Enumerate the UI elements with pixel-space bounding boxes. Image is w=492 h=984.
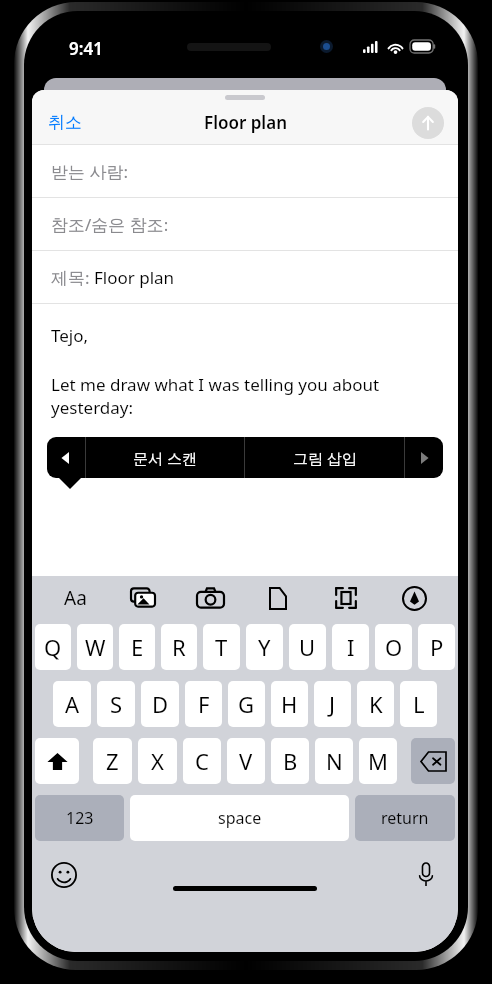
staticText: 제목:	[51, 266, 94, 289]
button[interactable]: 문서 스캔	[86, 437, 244, 478]
staticText: V	[239, 746, 253, 776]
staticText: H	[281, 689, 298, 719]
button[interactable]: Dictate	[408, 857, 444, 893]
button[interactable]: return	[355, 795, 455, 841]
staticText: S	[110, 689, 123, 719]
staticText: B	[283, 746, 298, 776]
button[interactable]: Shift	[35, 738, 79, 784]
button[interactable]: W	[77, 624, 113, 670]
staticText: O	[385, 632, 403, 662]
staticText: return	[381, 807, 429, 829]
button[interactable]: S	[97, 681, 135, 727]
button[interactable]: Send	[412, 107, 444, 139]
button[interactable]: Next	[405, 437, 443, 478]
staticText: C	[195, 746, 209, 776]
staticText: 9:41	[69, 37, 103, 60]
staticText: X	[151, 746, 164, 776]
button[interactable]: G	[228, 681, 265, 727]
staticText: Z	[106, 746, 119, 776]
staticText: Y	[258, 632, 271, 662]
staticText: I	[347, 632, 355, 662]
staticText: W	[85, 632, 106, 662]
staticText: L	[413, 689, 425, 719]
button[interactable]: Z	[93, 738, 132, 784]
button[interactable]: 취소	[32, 106, 98, 139]
staticText: D	[152, 689, 169, 719]
button[interactable]: R	[161, 624, 197, 670]
button[interactable]: F	[185, 681, 222, 727]
staticText: K	[369, 689, 383, 719]
button[interactable]: V	[227, 738, 265, 784]
button[interactable]: O	[375, 624, 412, 670]
staticText: 받는 사람:	[51, 160, 128, 183]
button[interactable]: Text format	[42, 576, 109, 620]
button[interactable]: Previous	[47, 437, 85, 478]
button[interactable]: space	[130, 795, 349, 841]
button[interactable]: 받는 사람:	[32, 145, 458, 198]
staticText: Tejo,	[51, 324, 89, 347]
button[interactable]: Backspace	[411, 738, 455, 784]
staticText: Let me draw what I was telling you about…	[51, 373, 434, 419]
staticText: Q	[44, 632, 62, 662]
button[interactable]: 123	[35, 795, 124, 841]
button[interactable]: E	[119, 624, 155, 670]
button[interactable]: B	[271, 738, 309, 784]
button[interactable]: A	[53, 681, 91, 727]
staticText: A	[65, 689, 80, 719]
button[interactable]: N	[315, 738, 353, 784]
button[interactable]: X	[138, 738, 177, 784]
button[interactable]: K	[357, 681, 394, 727]
staticText: 문서 스캔	[133, 448, 197, 468]
staticText: F	[198, 689, 210, 719]
staticText: Floor plan	[94, 266, 175, 289]
button[interactable]: D	[141, 681, 179, 727]
button[interactable]: Camera	[176, 576, 244, 620]
button[interactable]: 제목:	[32, 251, 458, 304]
staticText: space	[218, 807, 262, 829]
staticText: 123	[66, 807, 94, 829]
button[interactable]: 그림 삽입	[245, 437, 404, 478]
button[interactable]: T	[203, 624, 240, 670]
button[interactable]: J	[314, 681, 351, 727]
staticText: M	[368, 746, 388, 776]
button[interactable]: L	[400, 681, 437, 727]
staticText: Aa	[64, 585, 87, 611]
button[interactable]: P	[418, 624, 455, 670]
button[interactable]: I	[332, 624, 369, 670]
button[interactable]: Scan	[312, 576, 380, 620]
button[interactable]: H	[271, 681, 308, 727]
button[interactable]: Markup	[380, 576, 448, 620]
staticText: E	[131, 632, 144, 662]
staticText: P	[430, 632, 444, 662]
button[interactable]: Emoji	[46, 857, 82, 893]
button[interactable]: U	[289, 624, 326, 670]
staticText: 참조/숨은 참조:	[51, 213, 169, 236]
staticText: T	[215, 632, 228, 662]
button[interactable]: 참조/숨은 참조:	[32, 198, 458, 251]
staticText: 그림 삽입	[293, 448, 357, 468]
staticText: N	[326, 746, 343, 776]
button[interactable]: Y	[246, 624, 283, 670]
staticText: J	[329, 689, 336, 719]
button[interactable]: Document	[244, 576, 312, 620]
button[interactable]: M	[359, 738, 397, 784]
button[interactable]: Photos	[109, 576, 176, 620]
staticText: G	[238, 689, 255, 719]
button[interactable]: C	[183, 738, 221, 784]
button[interactable]: Q	[35, 624, 71, 670]
staticText: 취소	[48, 112, 82, 133]
staticText: R	[172, 632, 186, 662]
staticText: U	[299, 632, 316, 662]
staticText: Floor plan	[204, 111, 287, 134]
